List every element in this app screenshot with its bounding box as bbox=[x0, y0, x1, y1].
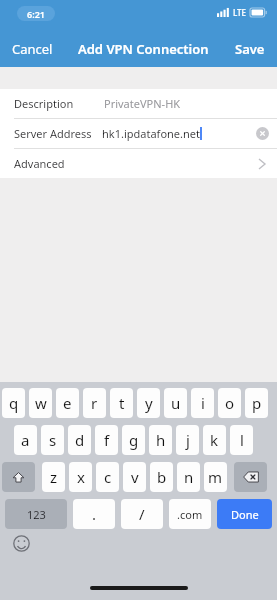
staticText: p bbox=[252, 393, 262, 413]
button[interactable]: p bbox=[245, 388, 268, 418]
staticText: hk1.ipdatafone.net bbox=[102, 126, 200, 141]
staticText: r bbox=[91, 393, 98, 413]
staticText: m bbox=[208, 467, 223, 487]
staticText: . bbox=[92, 504, 97, 524]
staticText: / bbox=[139, 504, 145, 524]
button[interactable]: Save bbox=[223, 34, 277, 64]
button[interactable]: Advanced bbox=[0, 149, 277, 178]
button[interactable]: Backspace bbox=[234, 462, 267, 492]
button[interactable]: e bbox=[56, 388, 79, 418]
button[interactable]: u bbox=[164, 388, 187, 418]
button[interactable]: Clear text bbox=[256, 127, 269, 140]
staticText: Advanced bbox=[14, 156, 65, 171]
staticText: Description bbox=[14, 96, 74, 111]
staticText: PrivateVPN-HK bbox=[104, 96, 181, 111]
staticText: s bbox=[49, 430, 57, 450]
button[interactable]: s bbox=[41, 425, 64, 455]
staticText: t bbox=[119, 393, 125, 413]
button[interactable]: t bbox=[110, 388, 133, 418]
staticText: Cancel bbox=[12, 40, 53, 58]
staticText: w bbox=[35, 393, 47, 413]
staticText: h bbox=[156, 430, 166, 450]
button[interactable]: n bbox=[177, 462, 200, 492]
button[interactable]: . bbox=[73, 499, 115, 529]
staticText: v bbox=[131, 467, 139, 487]
button[interactable]: q bbox=[2, 388, 25, 418]
staticText: n bbox=[184, 467, 194, 487]
button[interactable]: y bbox=[137, 388, 160, 418]
button[interactable]: Description bbox=[0, 89, 277, 118]
button[interactable]: Emoji keyboard bbox=[13, 535, 30, 552]
button[interactable]: .com bbox=[169, 499, 211, 529]
staticText: Server Address bbox=[14, 126, 92, 141]
staticText: e bbox=[63, 393, 72, 413]
staticText: Done bbox=[231, 507, 259, 522]
button[interactable]: Done bbox=[217, 499, 272, 529]
button[interactable]: Server Address bbox=[0, 119, 277, 148]
button[interactable]: x bbox=[69, 462, 92, 492]
button[interactable]: v bbox=[123, 462, 146, 492]
staticText: u bbox=[171, 393, 181, 413]
staticText: c bbox=[104, 467, 112, 487]
button[interactable]: r bbox=[83, 388, 106, 418]
staticText: 6:21 bbox=[27, 8, 45, 20]
staticText: x bbox=[77, 467, 85, 487]
button[interactable]: f bbox=[95, 425, 118, 455]
button[interactable]: l bbox=[230, 425, 253, 455]
button[interactable]: z bbox=[42, 462, 65, 492]
staticText: b bbox=[157, 467, 167, 487]
button[interactable]: m bbox=[204, 462, 227, 492]
staticText: l bbox=[240, 430, 244, 450]
staticText: Save bbox=[235, 40, 265, 58]
staticText: Add VPN Connection bbox=[78, 40, 209, 58]
staticText: f bbox=[104, 430, 110, 450]
button[interactable]: g bbox=[122, 425, 145, 455]
button[interactable]: w bbox=[29, 388, 52, 418]
button[interactable]: c bbox=[96, 462, 119, 492]
button[interactable]: / bbox=[121, 499, 163, 529]
staticText: .com bbox=[177, 507, 203, 522]
staticText: g bbox=[129, 430, 139, 450]
button[interactable]: Shift bbox=[2, 462, 35, 492]
button[interactable]: b bbox=[150, 462, 173, 492]
staticText: q bbox=[9, 393, 19, 413]
staticText: y bbox=[145, 393, 153, 413]
staticText: 123 bbox=[27, 507, 46, 522]
button[interactable]: Cancel bbox=[0, 34, 65, 64]
staticText: j bbox=[186, 430, 190, 450]
button[interactable]: i bbox=[191, 388, 214, 418]
button[interactable]: k bbox=[203, 425, 226, 455]
button[interactable]: h bbox=[149, 425, 172, 455]
staticText: i bbox=[201, 393, 205, 413]
button[interactable]: d bbox=[68, 425, 91, 455]
staticText: o bbox=[225, 393, 235, 413]
button[interactable]: 123 bbox=[5, 499, 67, 529]
staticText: LTE bbox=[233, 7, 247, 18]
button[interactable]: j bbox=[176, 425, 199, 455]
staticText: k bbox=[210, 430, 219, 450]
button[interactable]: o bbox=[218, 388, 241, 418]
staticText: d bbox=[75, 430, 85, 450]
staticText: a bbox=[21, 430, 30, 450]
staticText: z bbox=[50, 467, 58, 487]
button[interactable]: a bbox=[14, 425, 37, 455]
